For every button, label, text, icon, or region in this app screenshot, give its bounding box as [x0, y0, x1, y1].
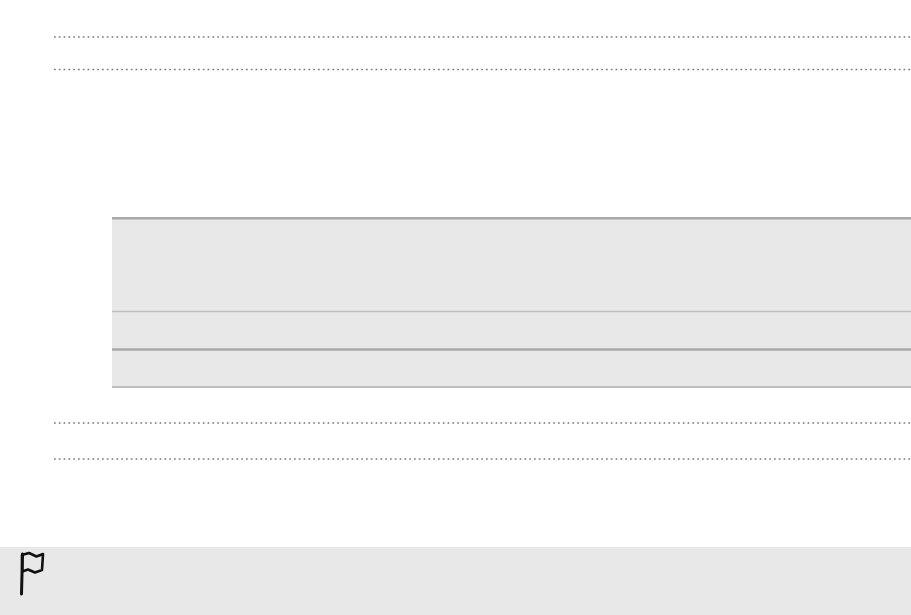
button[interactable]: Flag	[0, 0, 911, 615]
